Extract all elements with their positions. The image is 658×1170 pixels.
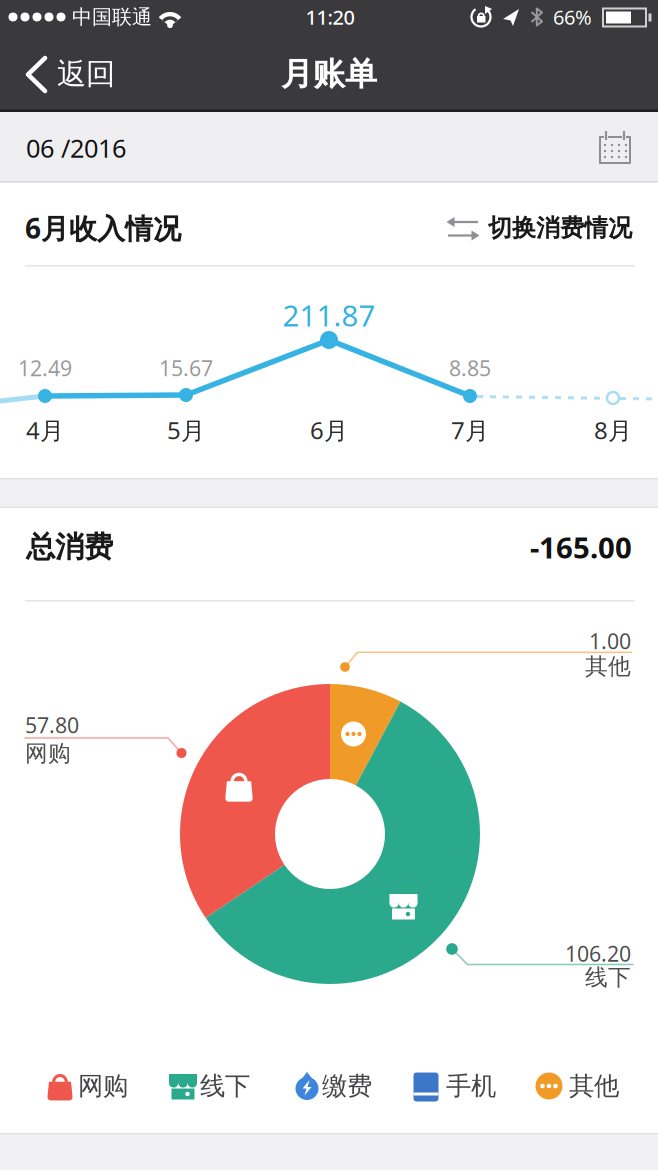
- button[interactable]: 选择月份: [0, 112, 658, 181]
- staticText: 手机: [446, 1070, 496, 1101]
- staticText: 06 /2016: [26, 131, 126, 165]
- staticText: 缴费: [322, 1070, 372, 1101]
- staticText: 网购: [78, 1070, 128, 1101]
- staticText: 15.67: [159, 354, 213, 382]
- staticText: 7月: [451, 414, 489, 446]
- staticText: 66%: [553, 4, 592, 30]
- staticText: 8.85: [449, 354, 491, 382]
- staticText: 线下: [200, 1070, 250, 1101]
- staticText: 4月: [26, 414, 64, 446]
- staticText: 其他: [585, 653, 631, 680]
- staticText: 1.00: [589, 627, 631, 655]
- staticText: 返回: [57, 56, 115, 92]
- staticText: 切换消费情况: [488, 213, 632, 243]
- staticText: 12.49: [18, 354, 72, 382]
- staticText: 其他: [569, 1070, 619, 1101]
- staticText: 11:20: [305, 4, 354, 30]
- staticText: 线下: [585, 964, 631, 991]
- staticText: 5月: [167, 414, 205, 446]
- button[interactable]: 切换消费情况: [440, 199, 650, 259]
- staticText: 57.80: [25, 711, 79, 739]
- staticText: 6月收入情况: [25, 209, 181, 247]
- staticText: 6月: [310, 414, 348, 446]
- staticText: -165.00: [530, 527, 632, 566]
- staticText: 8月: [594, 414, 632, 446]
- button[interactable]: 返回: [0, 39, 140, 109]
- staticText: 月账单: [281, 54, 377, 94]
- staticText: 中国联通: [72, 5, 152, 29]
- staticText: 106.20: [565, 939, 631, 968]
- staticText: 211.87: [282, 295, 375, 334]
- staticText: 网购: [25, 740, 71, 767]
- staticText: 总消费: [26, 529, 113, 565]
